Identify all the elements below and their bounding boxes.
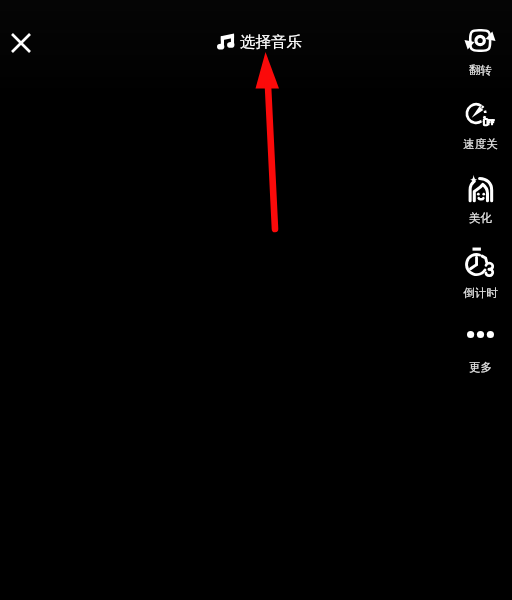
staticText: 美化 bbox=[469, 211, 492, 225]
button[interactable]: Flip camera bbox=[448, 27, 512, 80]
button[interactable]: Close bbox=[3, 25, 38, 60]
button[interactable]: Beautify bbox=[448, 174, 512, 228]
button[interactable]: Countdown bbox=[448, 247, 512, 303]
button[interactable]: More bbox=[448, 330, 512, 377]
button[interactable]: Speed off bbox=[448, 101, 512, 154]
staticText: 选择音乐 bbox=[240, 32, 302, 52]
staticText: 翻转 bbox=[469, 63, 492, 77]
staticText: 更多 bbox=[469, 360, 492, 374]
button[interactable]: 选择音乐 bbox=[217, 31, 302, 51]
staticText: 速度关 bbox=[463, 137, 498, 151]
staticText: 倒计时 bbox=[463, 286, 498, 300]
